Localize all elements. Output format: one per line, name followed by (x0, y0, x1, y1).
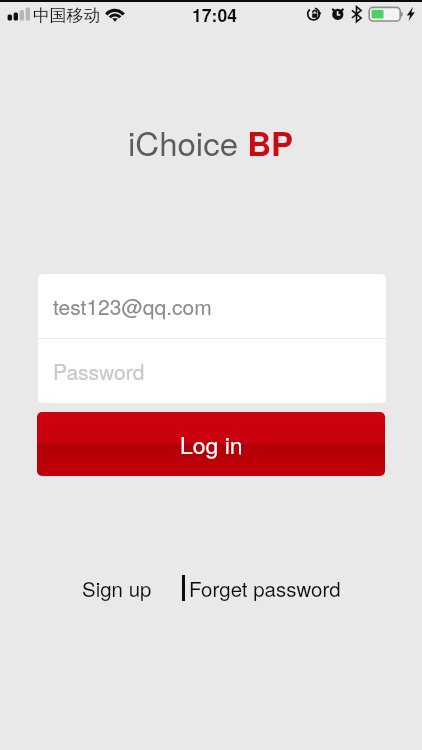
button[interactable]: Log in (37, 412, 385, 476)
button[interactable]: test123@qq.com (38, 274, 386, 338)
staticText: Sign up (82, 573, 152, 602)
staticText: test123@qq.com (53, 291, 212, 321)
staticText: Forget password (189, 573, 341, 602)
button[interactable]: Sign up (82, 573, 152, 602)
staticText: 17:04 (192, 2, 237, 27)
staticText: 中国移动 (33, 5, 101, 26)
button[interactable]: Forget password (189, 573, 341, 602)
staticText: Password (53, 356, 145, 386)
button[interactable]: Password (38, 339, 386, 403)
staticText: Log in (180, 428, 243, 461)
staticText: iChoice BP (128, 118, 294, 166)
